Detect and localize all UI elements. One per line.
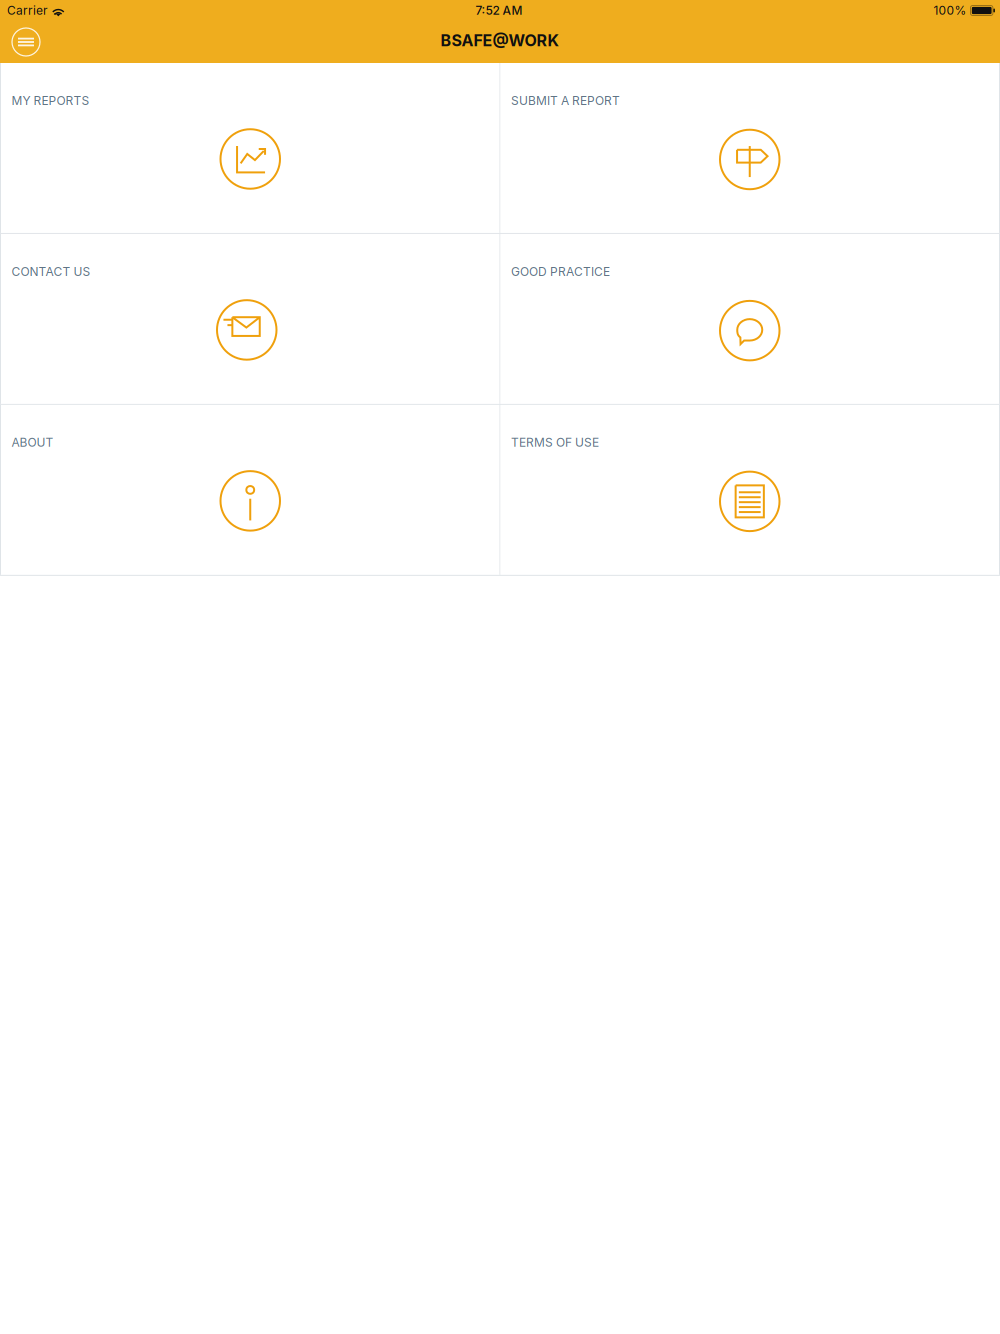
button[interactable]: GOOD PRACTICE xyxy=(500,234,999,404)
staticText: GOOD PRACTICE xyxy=(511,264,610,279)
staticText: 7:52 AM xyxy=(476,3,523,18)
staticText: SUBMIT A REPORT xyxy=(511,93,620,108)
staticText: CONTACT US xyxy=(11,264,90,279)
staticText: TERMS OF USE xyxy=(511,435,599,450)
button[interactable]: ABOUT xyxy=(1,405,499,575)
staticText: MY REPORTS xyxy=(11,93,89,108)
button[interactable]: TERMS OF USE xyxy=(500,405,999,575)
staticText: ABOUT xyxy=(11,435,53,450)
button[interactable]: Menu xyxy=(6,24,46,60)
staticText: 100% xyxy=(933,3,966,18)
staticText: Carrier xyxy=(7,3,48,18)
staticText: BSAFE@WORK xyxy=(440,31,559,50)
button[interactable]: CONTACT US xyxy=(1,234,499,404)
button[interactable]: MY REPORTS xyxy=(1,63,499,233)
button[interactable]: SUBMIT A REPORT xyxy=(500,63,999,233)
